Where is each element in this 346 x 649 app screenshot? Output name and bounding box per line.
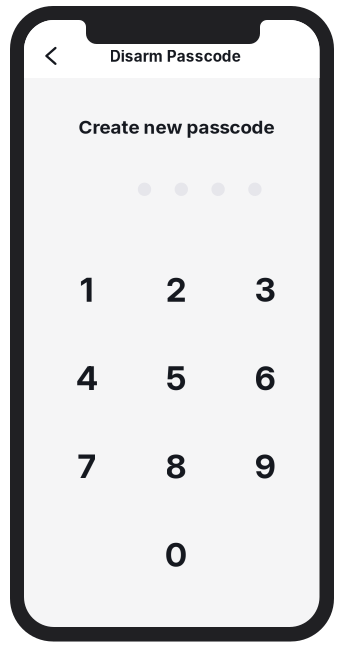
staticText: 6 bbox=[255, 358, 276, 398]
staticText: Disarm Passcode bbox=[110, 47, 241, 65]
staticText: 8 bbox=[166, 446, 187, 486]
button[interactable]: 0 bbox=[132, 519, 221, 591]
button[interactable]: Back bbox=[31, 36, 71, 76]
staticText: 9 bbox=[255, 446, 276, 486]
button[interactable]: 9 bbox=[221, 430, 310, 502]
staticText: Create new passcode bbox=[79, 116, 275, 138]
button[interactable]: 5 bbox=[132, 342, 221, 414]
staticText: 2 bbox=[166, 269, 186, 310]
staticText: 7 bbox=[77, 446, 96, 486]
staticText: 1 bbox=[80, 269, 94, 310]
button[interactable]: 8 bbox=[132, 430, 221, 502]
staticText: 0 bbox=[165, 534, 187, 575]
button[interactable]: 3 bbox=[221, 253, 310, 325]
staticText: 4 bbox=[76, 358, 98, 398]
button[interactable]: 6 bbox=[221, 342, 310, 414]
button[interactable]: 4 bbox=[42, 342, 131, 414]
staticText: 5 bbox=[166, 358, 186, 398]
button[interactable]: 1 bbox=[42, 253, 131, 325]
button[interactable]: 2 bbox=[132, 253, 221, 325]
button[interactable]: 7 bbox=[42, 430, 131, 502]
staticText: 3 bbox=[255, 269, 276, 310]
